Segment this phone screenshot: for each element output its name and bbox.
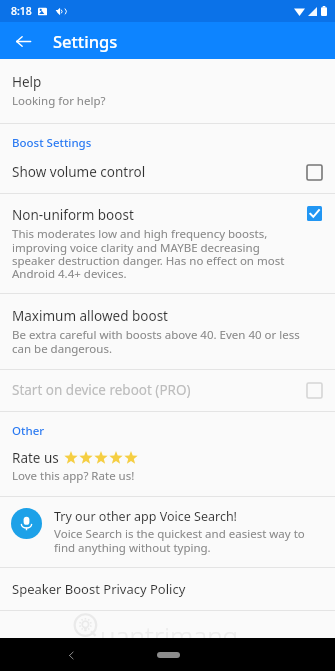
button[interactable]: Start on device reboot (PRO) xyxy=(0,370,335,411)
staticText: Love this app? Rate us! xyxy=(12,468,135,484)
button[interactable]: Checked xyxy=(307,206,322,221)
staticText: Rate us xyxy=(12,449,59,467)
button[interactable]: Non-uniform boost xyxy=(0,194,335,293)
staticText: Show volume control xyxy=(12,163,307,181)
staticText: Other xyxy=(12,423,335,439)
button[interactable]: Back xyxy=(58,642,84,668)
staticText: Boost Settings xyxy=(12,135,335,151)
button[interactable]: Unchecked xyxy=(307,383,322,398)
button[interactable]: Home xyxy=(148,647,188,663)
staticText: Looking for help? xyxy=(12,93,106,109)
staticText: Non-uniform boost xyxy=(12,206,134,224)
button[interactable]: Maximum allowed boost xyxy=(0,294,335,369)
staticText: uantrimang xyxy=(100,618,239,638)
button[interactable]: Back xyxy=(8,26,38,56)
staticText: Voice Search is the quickest and easiest… xyxy=(54,526,321,555)
staticText: Help xyxy=(12,73,42,91)
staticText: Maximum allowed boost xyxy=(12,307,168,325)
staticText: Be extra careful with boosts above 40. E… xyxy=(12,327,321,356)
staticText: Try our other app Voice Search! xyxy=(54,508,237,525)
button[interactable]: Rate us xyxy=(0,440,335,496)
button[interactable]: Try our other app Voice Search! xyxy=(0,497,335,567)
staticText: Start on device reboot (PRO) xyxy=(12,381,307,399)
button[interactable]: Help xyxy=(0,59,335,123)
button[interactable]: Show volume control xyxy=(0,152,335,193)
button[interactable]: Unchecked xyxy=(307,165,322,180)
staticText: Speaker Boost Privacy Policy xyxy=(12,580,186,598)
staticText: This moderates low and high frequency bo… xyxy=(12,226,297,281)
button[interactable]: Speaker Boost Privacy Policy xyxy=(0,568,335,610)
staticText: Settings xyxy=(53,30,118,52)
staticText: 8:18 xyxy=(11,4,32,18)
